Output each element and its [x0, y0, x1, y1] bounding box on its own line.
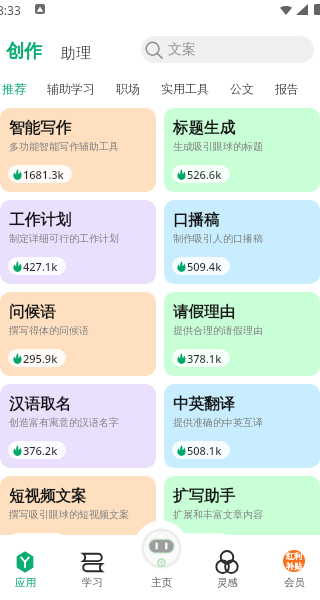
- staticText: 红利: [286, 551, 302, 561]
- staticText: 1681.3k: [23, 167, 64, 182]
- staticText: 口播稿: [173, 210, 220, 230]
- staticText: 灵感: [217, 576, 238, 589]
- staticText: 短视频文案: [9, 486, 87, 506]
- button[interactable]: 扩写助手: [164, 476, 320, 560]
- staticText: 中英翻译: [173, 394, 235, 414]
- button[interactable]: 报告: [275, 81, 299, 95]
- button[interactable]: 文案: [141, 36, 314, 63]
- button[interactable]: 创作: [6, 40, 42, 63]
- button[interactable]: 职场: [116, 81, 140, 95]
- staticText: 撰写吸引眼球的短视频文案: [9, 508, 129, 521]
- staticText: 376.2k: [23, 443, 58, 458]
- button[interactable]: 口播稿: [164, 200, 320, 284]
- button[interactable]: 红利: [264, 540, 320, 590]
- button[interactable]: 主页: [131, 540, 191, 590]
- button[interactable]: 中英翻译: [164, 384, 320, 468]
- staticText: 汉语取名: [9, 394, 71, 414]
- button[interactable]: 短视频文案: [0, 476, 156, 560]
- staticText: 509.4k: [187, 259, 222, 274]
- staticText: 撰写得体的问候语: [9, 324, 89, 337]
- staticText: 问候语: [9, 302, 56, 322]
- staticText: 526.6k: [187, 167, 222, 182]
- staticText: 提供准确的中英互译: [173, 416, 263, 429]
- button[interactable]: 问候语: [0, 292, 156, 376]
- staticText: 主页: [151, 576, 172, 589]
- staticText: 提供合理的请假理由: [173, 324, 263, 337]
- button[interactable]: 辅助学习: [47, 81, 95, 95]
- staticText: 智能写作: [9, 118, 71, 138]
- button[interactable]: 标题生成: [164, 108, 320, 192]
- button[interactable]: 工作计划: [0, 200, 156, 284]
- staticText: 制作吸引人的口播稿: [173, 232, 263, 245]
- staticText: 补贴: [286, 561, 302, 571]
- button[interactable]: 学习: [62, 540, 122, 590]
- staticText: 扩写助手: [173, 486, 235, 506]
- button[interactable]: 应用: [0, 540, 55, 590]
- staticText: 标题生成: [173, 118, 235, 138]
- button[interactable]: 公文: [230, 81, 254, 95]
- staticText: 508.1k: [187, 443, 222, 458]
- staticText: 工作计划: [9, 210, 71, 230]
- staticText: 8:33: [0, 2, 21, 18]
- staticText: 制定详细可行的工作计划: [9, 232, 119, 245]
- staticText: 创造富有寓意的汉语名字: [9, 416, 119, 429]
- staticText: 多功能智能写作辅助工具: [9, 140, 119, 153]
- staticText: 文案: [168, 41, 196, 59]
- staticText: 378.1k: [187, 351, 222, 366]
- button[interactable]: 推荐: [2, 81, 26, 95]
- staticText: 学习: [82, 576, 103, 589]
- button[interactable]: 灵感: [197, 540, 257, 590]
- staticText: 生成吸引眼球的标题: [173, 140, 263, 153]
- staticText: 会员: [284, 576, 305, 589]
- button[interactable]: 实用工具: [161, 81, 209, 95]
- button[interactable]: 助理: [61, 44, 91, 63]
- staticText: 427.1k: [23, 259, 58, 274]
- staticText: 应用: [15, 576, 36, 589]
- button[interactable]: 汉语取名: [0, 384, 156, 468]
- staticText: 295.9k: [23, 351, 58, 366]
- staticText: 请假理由: [173, 302, 235, 322]
- button[interactable]: 智能写作: [0, 108, 156, 192]
- staticText: 扩展和丰富文章内容: [173, 508, 263, 521]
- button[interactable]: 请假理由: [164, 292, 320, 376]
